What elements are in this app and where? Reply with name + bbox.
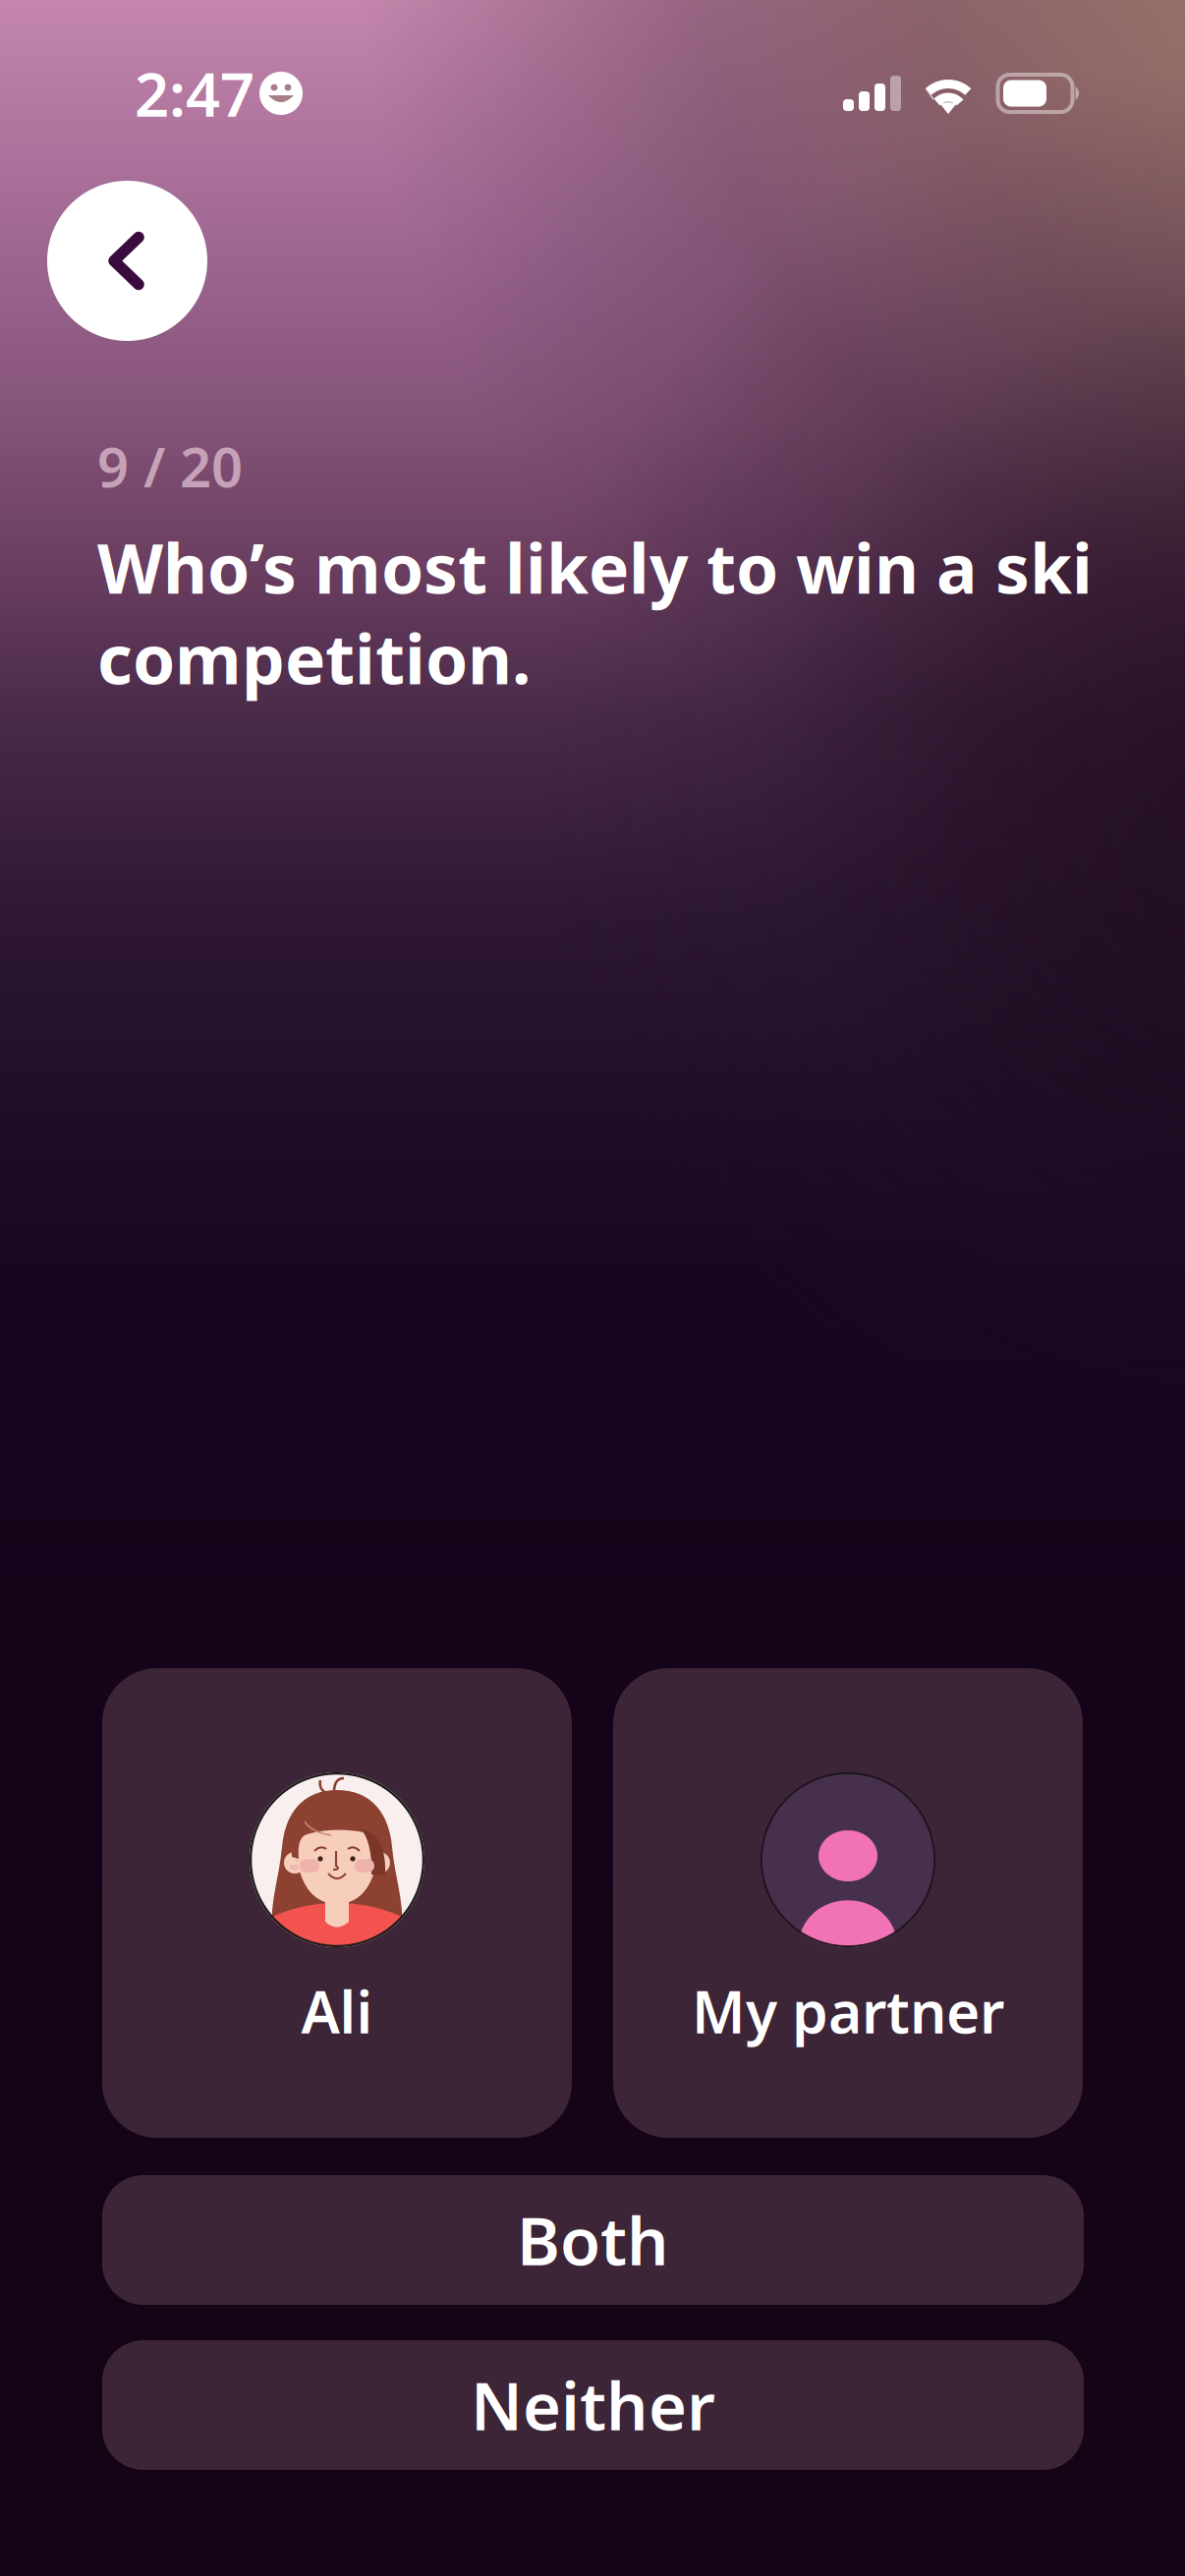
staticText: Neither [471, 2362, 715, 2448]
button[interactable]: Ali [102, 1668, 572, 2138]
staticText: Who’s most likely to win a ski competiti… [97, 522, 1093, 703]
staticText: 2:47 [135, 53, 254, 133]
button[interactable]: Both [102, 2175, 1084, 2305]
staticText: Ali [301, 1973, 373, 2049]
staticText: 9 / 20 [97, 429, 243, 502]
button[interactable]: My partner [613, 1668, 1083, 2138]
button[interactable]: Back [47, 181, 207, 341]
staticText: Both [517, 2196, 669, 2283]
button[interactable]: Neither [102, 2340, 1084, 2470]
staticText: My partner [692, 1973, 1004, 2049]
